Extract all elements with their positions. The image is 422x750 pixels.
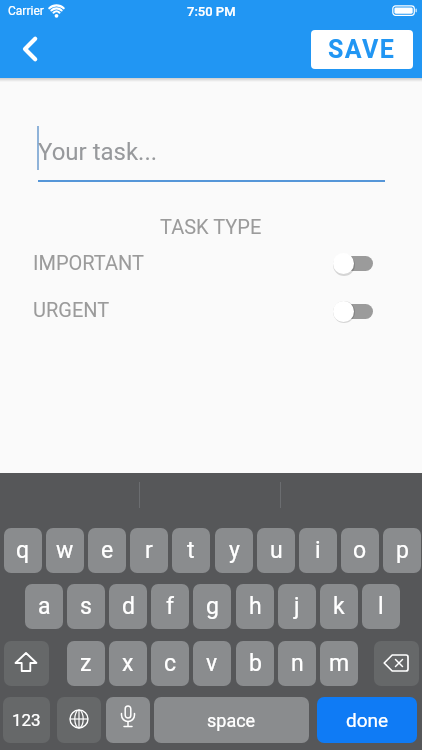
button[interactable] — [106, 697, 150, 743]
button[interactable]: m — [320, 641, 358, 686]
button[interactable]: n — [278, 641, 316, 686]
staticText: 7:50 PM — [187, 4, 236, 19]
staticText: f — [166, 593, 174, 620]
button[interactable]: q — [4, 528, 42, 573]
staticText: b — [249, 650, 262, 677]
staticText: TASK TYPE — [160, 215, 262, 238]
button[interactable]: z — [67, 641, 105, 686]
staticText: m — [329, 650, 350, 677]
staticText: w — [56, 537, 74, 564]
staticText: c — [164, 650, 177, 677]
staticText: n — [291, 650, 304, 677]
staticText: URGENT — [33, 298, 110, 321]
button[interactable]: v — [193, 641, 231, 686]
button[interactable]: r — [130, 528, 168, 573]
staticText: IMPORTANT — [33, 251, 144, 274]
button[interactable]: l — [362, 584, 400, 629]
button[interactable]: done — [317, 697, 417, 743]
staticText: Your task... — [38, 138, 158, 166]
staticText: 123 — [12, 710, 41, 730]
button[interactable]: i — [299, 528, 337, 573]
button[interactable]: o — [341, 528, 379, 573]
staticText: e — [101, 537, 114, 564]
button[interactable] — [37, 118, 385, 182]
staticText: y — [229, 537, 240, 564]
staticText: p — [396, 537, 409, 564]
staticText: o — [353, 537, 367, 564]
staticText: u — [270, 537, 283, 564]
button[interactable]: u — [257, 528, 295, 573]
staticText: s — [80, 593, 92, 620]
staticText: d — [122, 593, 135, 620]
button[interactable]: t — [172, 528, 210, 573]
button[interactable] — [12, 28, 52, 68]
button[interactable] — [374, 641, 419, 686]
staticText: r — [145, 537, 153, 564]
staticText: h — [249, 593, 262, 620]
staticText: k — [333, 593, 345, 620]
button[interactable]: p — [383, 528, 421, 573]
button[interactable]: h — [236, 584, 274, 629]
staticText: space — [207, 710, 256, 731]
button[interactable]: d — [109, 584, 147, 629]
button[interactable]: s — [67, 584, 105, 629]
button[interactable]: f — [151, 584, 189, 629]
button[interactable]: j — [278, 584, 316, 629]
staticText: j — [294, 593, 300, 620]
staticText: i — [315, 537, 321, 564]
staticText: SAVE — [328, 35, 396, 64]
button[interactable]: 123 — [3, 697, 50, 743]
button[interactable]: w — [46, 528, 84, 573]
button[interactable]: a — [25, 584, 63, 629]
button[interactable]: SAVE — [311, 30, 413, 69]
button[interactable]: c — [151, 641, 189, 686]
button[interactable] — [336, 256, 373, 271]
staticText: t — [187, 537, 195, 564]
button[interactable]: space — [154, 697, 309, 743]
button[interactable] — [57, 697, 101, 743]
staticText: done — [346, 709, 389, 731]
button[interactable]: g — [193, 584, 231, 629]
staticText: x — [122, 650, 134, 677]
staticText: q — [16, 537, 30, 564]
staticText: Carrier — [8, 4, 44, 18]
staticText: v — [206, 650, 218, 677]
staticText: l — [378, 593, 384, 620]
button[interactable]: x — [109, 641, 147, 686]
button[interactable]: b — [236, 641, 274, 686]
staticText: z — [80, 650, 92, 677]
button[interactable]: y — [215, 528, 253, 573]
button[interactable]: e — [88, 528, 126, 573]
button[interactable] — [336, 304, 373, 319]
staticText: a — [38, 593, 51, 620]
staticText: g — [206, 593, 219, 620]
button[interactable] — [4, 641, 49, 686]
button[interactable]: k — [320, 584, 358, 629]
